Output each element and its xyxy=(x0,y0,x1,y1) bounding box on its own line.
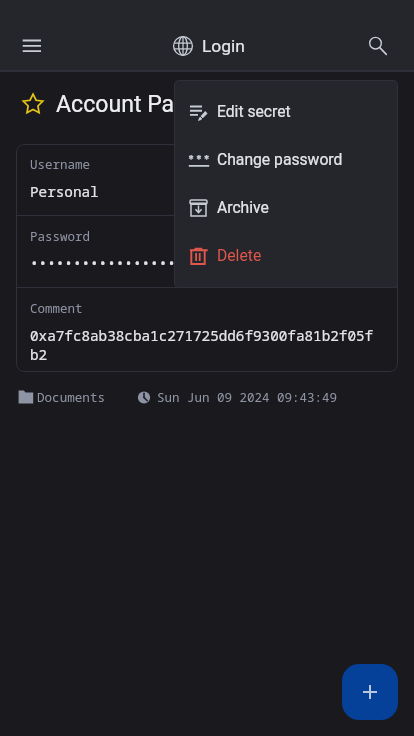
staticText: Documents xyxy=(37,389,106,406)
button[interactable]: Search xyxy=(355,24,399,68)
staticText: Username xyxy=(30,156,91,173)
button[interactable]: Change password xyxy=(174,136,398,184)
staticText: Sun Jun 09 2024 09:43:49 xyxy=(157,389,338,406)
staticText: Edit secret xyxy=(217,102,291,120)
button[interactable]: Add item xyxy=(342,664,398,720)
button[interactable]: Password xyxy=(16,216,398,287)
button[interactable]: Archive xyxy=(174,184,398,232)
staticText: Password xyxy=(30,228,91,245)
staticText: Change password xyxy=(217,150,343,168)
button[interactable]: Edit secret xyxy=(174,88,398,136)
staticText: •••••••••••••••••••••• xyxy=(30,254,219,273)
button[interactable]: Open navigation menu xyxy=(10,24,54,68)
staticText: Login xyxy=(202,36,245,56)
staticText: Delete xyxy=(217,246,262,264)
button[interactable]: Favourite xyxy=(21,92,46,117)
staticText: Comment xyxy=(30,300,83,317)
staticText: Personal xyxy=(30,182,99,201)
button[interactable]: Comment xyxy=(16,288,398,372)
staticText: Archive xyxy=(217,198,269,216)
staticText: 0xa7fc8ab38cba1c271725dd6f9300fa81b2f05f… xyxy=(30,326,380,364)
button[interactable]: Folder xyxy=(17,388,33,406)
button[interactable]: Delete xyxy=(174,232,398,280)
button[interactable]: Username xyxy=(16,144,398,215)
staticText: Account Password xyxy=(56,91,250,118)
